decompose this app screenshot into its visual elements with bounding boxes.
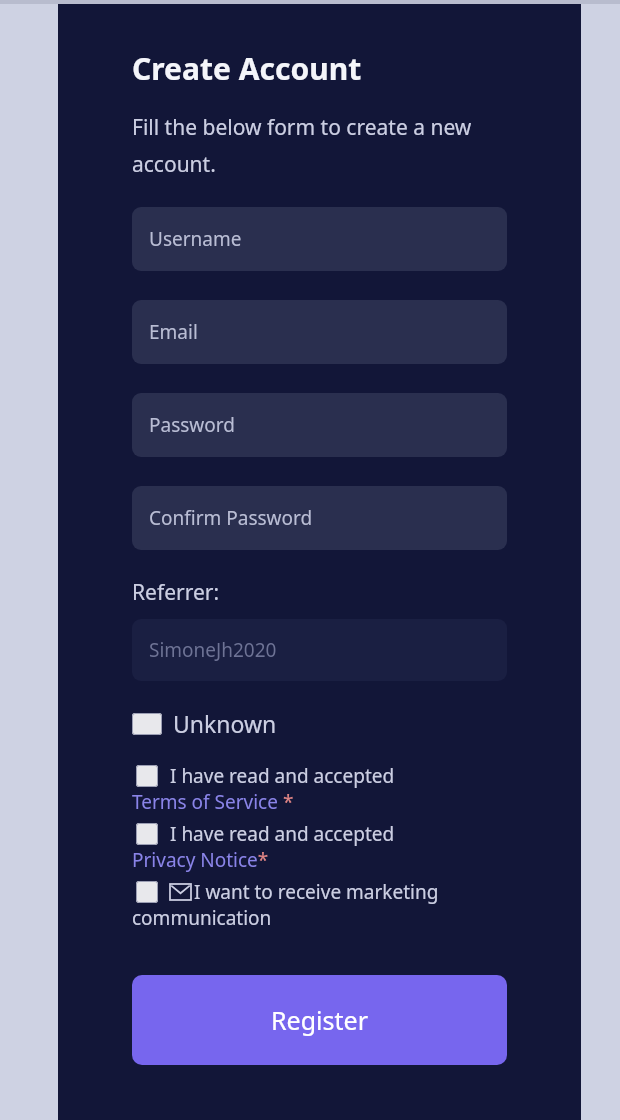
button[interactable]: Checkbox: [136, 823, 158, 845]
button[interactable]: Email: [132, 300, 507, 364]
staticText: Referrer:: [132, 578, 220, 607]
staticText: SimoneJh2020: [149, 637, 277, 663]
staticText: Email: [149, 319, 198, 345]
staticText: communication: [132, 905, 272, 931]
staticText: I have read and accepted: [170, 763, 395, 789]
button[interactable]: Checkbox: [136, 765, 158, 787]
staticText: I have read and accepted: [170, 821, 395, 847]
staticText: Username: [149, 226, 242, 252]
button[interactable]: SimoneJh2020: [132, 619, 507, 681]
staticText: Confirm Password: [149, 505, 313, 531]
button[interactable]: Checkbox: [136, 881, 158, 903]
button[interactable]: Checkbox: [132, 713, 162, 735]
staticText: Privacy Notice*: [132, 847, 269, 873]
button[interactable]: Checkbox: [132, 821, 507, 873]
staticText: Create Account: [132, 48, 362, 89]
staticText: Unknown: [173, 708, 277, 739]
staticText: Terms of Service *: [132, 789, 294, 815]
button[interactable]: Password: [132, 393, 507, 457]
staticText: Fill the below form to create a new acco…: [132, 113, 507, 178]
other: Email: [170, 884, 191, 900]
button[interactable]: Checkbox: [132, 879, 507, 931]
staticText: I want to receive marketing: [194, 879, 439, 905]
button[interactable]: Username: [132, 207, 507, 271]
button[interactable]: Checkbox: [132, 763, 507, 815]
button[interactable]: Checkbox: [132, 708, 277, 739]
staticText: Password: [149, 412, 235, 438]
button[interactable]: Confirm Password: [132, 486, 507, 550]
button[interactable]: Register: [132, 975, 507, 1065]
staticText: Register: [271, 1003, 368, 1037]
